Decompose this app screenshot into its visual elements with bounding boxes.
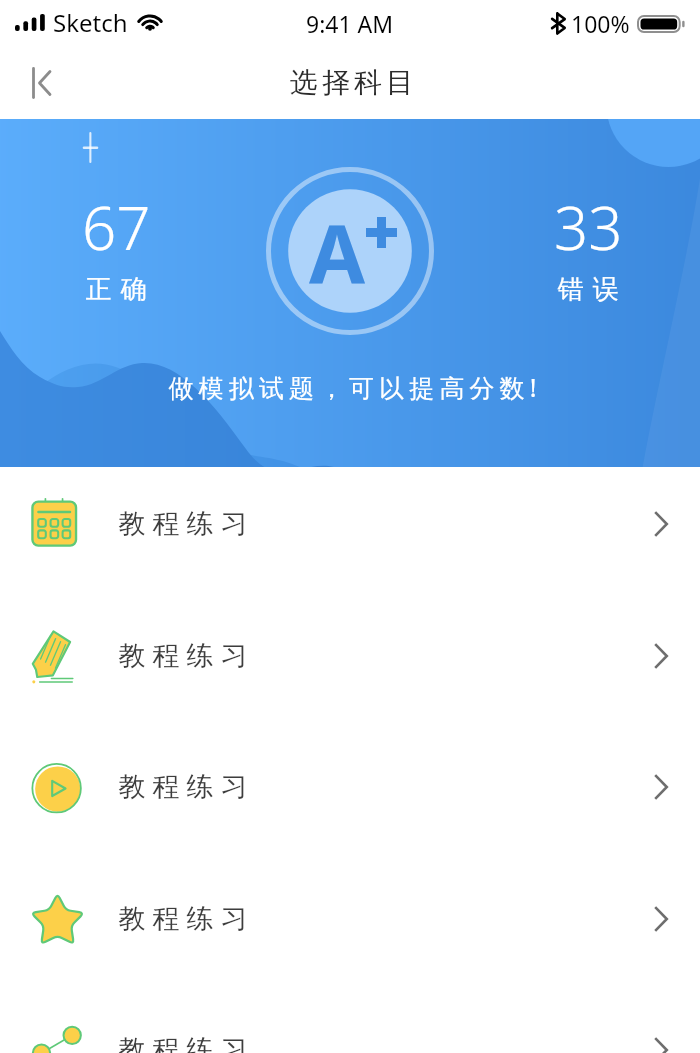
staticText: 错误 [553,273,623,306]
staticText: 33 [554,186,623,268]
button[interactable]: 教程练习 [0,853,700,984]
button[interactable]: 教程练习 [0,984,700,1053]
staticText: 教程练习 [115,1033,251,1053]
staticText: 9:41 AM [306,8,394,39]
staticText: 做模拟试题，可以提高分数! [168,370,542,404]
staticText: 67 [82,186,151,268]
staticText: 教程练习 [115,639,251,673]
button[interactable]: 教程练习 [0,721,700,853]
staticText: 教程练习 [115,507,251,541]
staticText: A [309,197,366,307]
button[interactable]: 教程练习 [0,590,700,721]
staticText: 正确 [81,273,151,306]
button[interactable]: Back [14,56,68,110]
staticText: Sketch [53,6,128,39]
staticText: 教程练习 [115,770,251,804]
button[interactable]: 教程练习 [0,457,700,590]
staticText: 选择科目 [288,65,416,100]
staticText: 教程练习 [115,902,251,936]
staticText: 100% [571,8,630,39]
